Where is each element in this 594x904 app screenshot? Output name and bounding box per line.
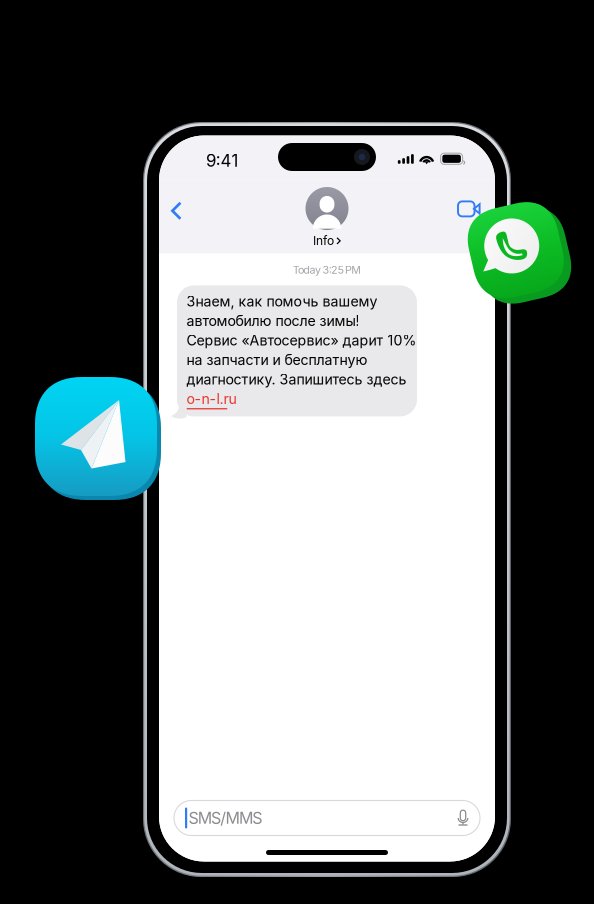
button[interactable]: Back — [159, 190, 201, 232]
staticText: Знаем, как помочь вашему — [186, 293, 377, 310]
staticText: 9:41 — [206, 150, 238, 171]
button[interactable]: Contact info — [267, 179, 387, 248]
button[interactable]: Message input SMS/MMS — [174, 800, 480, 835]
staticText: автомобилю после зимы! — [186, 312, 359, 329]
staticText: o-n-l.ru — [186, 390, 236, 407]
staticText: диагностику. Запишитесь здесь — [186, 371, 406, 388]
staticText: на запчасти и бесплатную — [186, 351, 367, 368]
button[interactable]: FaceTime video call — [447, 190, 495, 232]
staticText: Info — [313, 233, 334, 248]
staticText: Сервис «Автосервис» дарит 10% — [186, 332, 416, 349]
staticText: Today 3:25 PM — [293, 263, 361, 276]
staticText: SMS/MMS — [188, 808, 262, 828]
